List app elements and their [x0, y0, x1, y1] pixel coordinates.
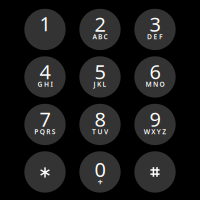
button[interactable]: 5 — [79, 56, 121, 98]
staticText: TUV — [92, 127, 108, 136]
staticText: JKL — [93, 80, 106, 89]
button[interactable]: 0 — [79, 151, 121, 193]
staticText: 0 — [94, 156, 105, 183]
button[interactable]: Star — [24, 151, 66, 193]
staticText: 9 — [149, 106, 160, 132]
staticText: + — [97, 175, 102, 188]
staticText: 3 — [149, 11, 160, 37]
staticText: 4 — [39, 58, 50, 85]
button[interactable]: 7 — [24, 104, 66, 145]
staticText: 6 — [149, 58, 160, 85]
staticText: ABC — [92, 32, 107, 41]
staticText: 8 — [94, 106, 105, 132]
button[interactable]: 6 — [134, 56, 176, 98]
button[interactable]: 8 — [79, 104, 121, 145]
staticText: GHI — [37, 80, 52, 89]
staticText: DEF — [147, 32, 163, 41]
button[interactable]: 4 — [24, 56, 66, 98]
button[interactable]: 2 — [79, 9, 121, 50]
staticText: 5 — [94, 58, 105, 85]
staticText: 2 — [94, 11, 105, 37]
button[interactable]: 9 — [134, 104, 176, 145]
staticText: WXYZ — [144, 127, 166, 136]
staticText: 1 — [39, 10, 50, 37]
button[interactable]: 3 — [134, 9, 176, 50]
staticText: PQRS — [34, 127, 56, 136]
staticText: 7 — [39, 106, 50, 132]
button[interactable]: Pound — [134, 151, 176, 193]
button[interactable]: 1 — [24, 9, 66, 50]
staticText: MNO — [145, 80, 164, 89]
